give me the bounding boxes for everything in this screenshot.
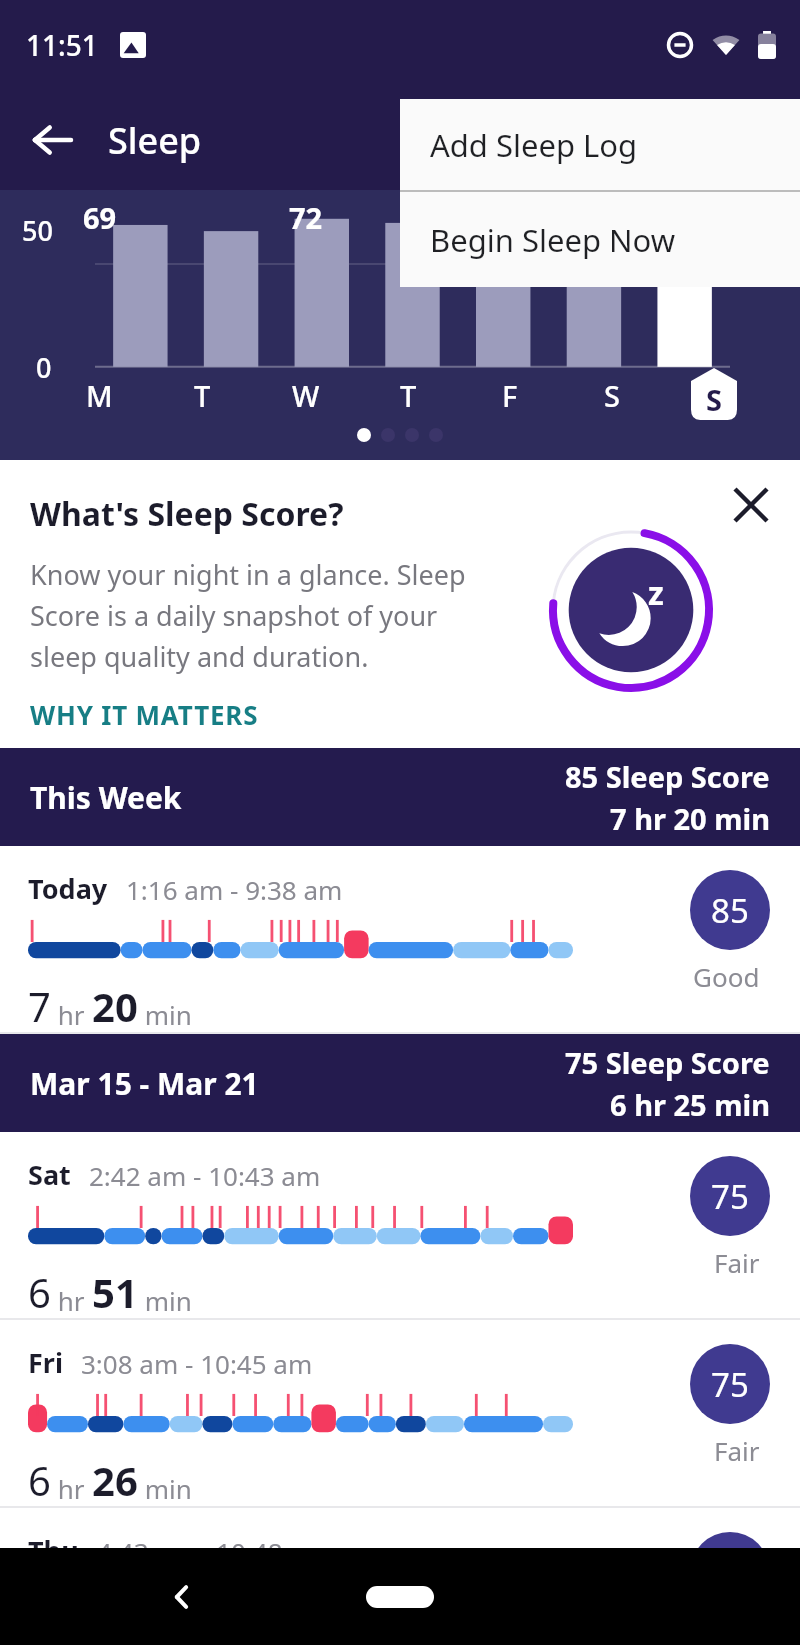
staticText: This Week — [30, 777, 182, 818]
staticText: 26 — [92, 1453, 138, 1506]
button[interactable]: WHY IT MATTERS — [30, 697, 259, 732]
staticText: hr — [51, 1283, 92, 1318]
staticText: 3:08 am - 10:45 am — [81, 1346, 313, 1381]
staticText: Begin Sleep Now — [430, 219, 676, 261]
staticText: 6 — [28, 1453, 51, 1506]
button[interactable]: Thu — [0, 1508, 800, 1645]
staticText: 6 hr 25 min — [610, 1085, 770, 1124]
staticText: Good — [693, 959, 760, 994]
staticText: 85 Sleep Score — [565, 757, 770, 796]
staticText: 75 — [711, 1362, 749, 1407]
staticText: hr — [51, 1471, 92, 1506]
staticText: Sat — [28, 1156, 71, 1193]
staticText: Fair — [714, 1245, 760, 1280]
staticText: 75 Sleep Score — [565, 1043, 770, 1082]
staticText: 72 — [289, 198, 323, 237]
staticText: 7 — [28, 979, 51, 1032]
staticText: T — [194, 376, 211, 415]
staticText: min — [138, 1283, 192, 1318]
button[interactable]: Close — [718, 472, 784, 538]
staticText: Fair — [714, 1433, 760, 1468]
staticText: min — [138, 1471, 192, 1506]
button[interactable]: Back — [16, 104, 88, 176]
button[interactable]: Fri — [0, 1320, 800, 1508]
staticText: WHY IT MATTERS — [30, 697, 259, 732]
button[interactable]: Begin Sleep Now — [400, 192, 800, 287]
staticText: M — [86, 376, 113, 415]
staticText: min — [138, 997, 192, 1032]
staticText: W — [292, 376, 320, 415]
button[interactable]: Sat — [0, 1132, 800, 1320]
staticText: 4:43 am - 10:48 am — [97, 1534, 329, 1569]
button[interactable]: Mar 15 - Mar 21 — [0, 1034, 800, 1132]
staticText: Sleep — [108, 116, 202, 165]
staticText: 7 hr 20 min — [610, 799, 770, 838]
staticText: hr — [51, 997, 92, 1032]
button[interactable]: This Week — [0, 748, 800, 846]
staticText: Mar 15 - Mar 21 — [30, 1063, 259, 1104]
staticText: 0 — [36, 349, 52, 386]
staticText: F — [502, 376, 518, 415]
staticText: 85 — [711, 888, 749, 933]
staticText: Fri — [28, 1344, 63, 1381]
staticText: 1:16 am - 9:38 am — [126, 872, 343, 907]
staticText: 75 — [711, 1174, 749, 1219]
staticText: Add Sleep Log — [430, 124, 638, 166]
staticText: 20 — [92, 979, 138, 1032]
staticText: T — [400, 376, 417, 415]
staticText: 50 — [22, 212, 53, 249]
staticText: S — [706, 380, 722, 419]
button[interactable]: Home — [366, 1586, 434, 1608]
staticText: S — [604, 376, 620, 415]
staticText: 69 — [83, 198, 117, 237]
staticText: 11:51 — [26, 26, 98, 64]
staticText: What's Sleep Score? — [30, 492, 344, 536]
staticText: 51 — [92, 1265, 138, 1318]
button[interactable]: Today — [0, 846, 800, 1034]
staticText: 2:42 am - 10:43 am — [89, 1158, 321, 1193]
button[interactable]: Add Sleep Log — [400, 99, 800, 190]
staticText: z — [648, 571, 664, 615]
staticText: Thu — [28, 1532, 79, 1569]
staticText: Today — [28, 870, 108, 907]
button[interactable]: Back — [147, 1562, 217, 1632]
staticText: Know your night in a glance. Sleep Score… — [30, 556, 466, 675]
staticText: 6 — [28, 1265, 51, 1318]
